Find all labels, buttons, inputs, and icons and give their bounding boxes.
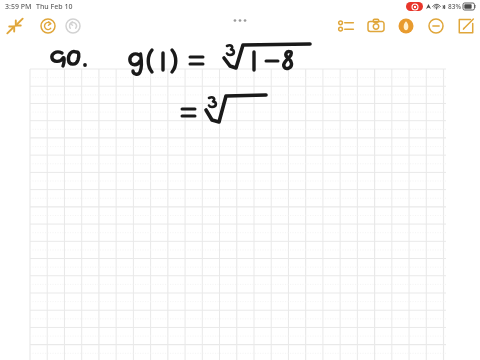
- button[interactable]: Compose: [455, 15, 477, 37]
- staticText: Thu Feb 10: [36, 2, 73, 12]
- staticText: 83%: [448, 2, 461, 11]
- button[interactable]: Camera: [365, 15, 387, 37]
- button[interactable]: Collapse: [4, 15, 26, 37]
- button[interactable]: Outline: [335, 15, 357, 37]
- staticText: 3:59 PM: [5, 2, 32, 12]
- button[interactable]: Highlighter: [395, 15, 417, 37]
- button[interactable]: More options: [227, 13, 253, 27]
- button[interactable]: Eraser: [425, 15, 447, 37]
- button[interactable]: Redo: [62, 15, 84, 37]
- button[interactable]: Undo: [37, 15, 59, 37]
